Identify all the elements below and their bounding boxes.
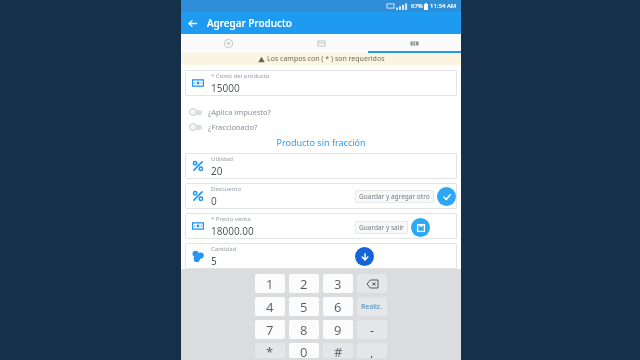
button[interactable]: Realiz.	[357, 297, 387, 316]
button[interactable]: Guardar y agregar otro	[355, 190, 434, 203]
button[interactable]: #	[323, 343, 353, 358]
staticText: 18000.00	[211, 224, 254, 238]
staticText: Descuento	[211, 185, 242, 193]
button[interactable]: Inventory tab	[275, 34, 368, 53]
button[interactable]: * Costo del producto	[185, 70, 457, 96]
staticText: Guardar y agregar otro	[359, 192, 430, 201]
staticText: ,	[370, 343, 374, 358]
staticText: Los campos con ( * ) son requeridos	[267, 54, 385, 64]
staticText: * Costo del producto	[211, 72, 270, 80]
staticText: 67%	[411, 2, 423, 10]
staticText: * Precio venta	[211, 215, 251, 223]
button[interactable]: Details tab	[181, 34, 275, 53]
staticText: 15000	[211, 81, 240, 95]
staticText: 1	[266, 275, 274, 293]
button[interactable]: 4	[255, 297, 285, 316]
staticText: 11:54 AM	[430, 2, 457, 10]
button[interactable]: 8	[289, 320, 319, 339]
staticText: 0	[300, 343, 308, 358]
staticText: Agregar Producto	[207, 16, 292, 30]
button[interactable]: ¿Aplica impuesto?	[189, 104, 461, 119]
staticText: 9	[334, 321, 342, 339]
staticText: *	[266, 343, 274, 358]
button[interactable]: 6	[323, 297, 353, 316]
button[interactable]: 9	[323, 320, 353, 339]
button[interactable]: ¿Fraccionado?	[189, 119, 461, 134]
button[interactable]: Next field	[355, 247, 374, 266]
button[interactable]: Cantidad	[185, 243, 457, 269]
button[interactable]: *	[255, 343, 285, 358]
button[interactable]: Guardar y salir	[355, 221, 408, 234]
staticText: #	[334, 343, 343, 358]
staticText: ¿Aplica impuesto?	[208, 107, 271, 117]
button[interactable]: 3	[323, 274, 353, 293]
button[interactable]: Barcode tab	[368, 34, 461, 53]
button[interactable]: Save and exit	[411, 218, 430, 237]
button[interactable]: Backspace	[357, 274, 387, 293]
staticText: Producto sin fracción	[181, 136, 461, 148]
staticText: 7	[266, 321, 274, 339]
staticText: ¿Fraccionado?	[208, 122, 258, 132]
staticText: Realiz.	[361, 302, 383, 312]
button[interactable]: ,	[357, 343, 387, 358]
staticText: 0	[211, 194, 217, 208]
staticText: Guardar y salir	[359, 223, 404, 232]
staticText: 8	[300, 321, 308, 339]
staticText: 4	[266, 298, 274, 316]
button[interactable]: -	[357, 320, 387, 339]
button[interactable]: Descuento	[185, 183, 457, 209]
button[interactable]: Utilidad	[185, 153, 457, 179]
button[interactable]: 7	[255, 320, 285, 339]
staticText: 5	[300, 298, 308, 316]
staticText: 2	[300, 275, 308, 293]
staticText: 20	[211, 164, 223, 178]
button[interactable]: Save and add another	[437, 187, 456, 206]
staticText: Utilidad	[211, 155, 233, 163]
button[interactable]: 0	[289, 343, 319, 358]
button[interactable]: 1	[255, 274, 285, 293]
button[interactable]: * Precio venta	[185, 213, 457, 239]
staticText: 6	[334, 298, 342, 316]
button[interactable]: Back	[181, 12, 203, 34]
staticText: Cantidad	[211, 245, 237, 253]
staticText: 3	[334, 275, 342, 293]
button[interactable]: 5	[289, 297, 319, 316]
button[interactable]: 2	[289, 274, 319, 293]
staticText: 5	[211, 254, 217, 268]
staticText: -	[370, 321, 375, 339]
